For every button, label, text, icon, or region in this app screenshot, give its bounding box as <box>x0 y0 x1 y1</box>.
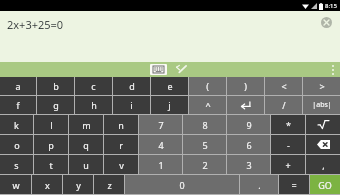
staticText: u <box>83 159 89 171</box>
button[interactable]: w <box>0 175 31 194</box>
button[interactable]: u <box>69 155 103 174</box>
staticText: < <box>281 80 287 92</box>
staticText: i <box>130 99 133 111</box>
staticText: j <box>168 99 171 111</box>
button[interactable]: - <box>271 135 305 154</box>
button[interactable]: < <box>265 77 302 95</box>
button[interactable]: ( <box>189 77 226 95</box>
button[interactable]: o <box>0 135 33 154</box>
button[interactable]: d <box>113 77 150 95</box>
staticText: 0 <box>179 179 185 191</box>
staticText: 2 <box>202 159 208 171</box>
button[interactable]: |abs| <box>303 96 340 114</box>
staticText: z <box>107 179 112 191</box>
button[interactable]: h <box>75 96 112 114</box>
button[interactable]: 1 <box>139 155 182 174</box>
staticText: GO <box>318 179 332 191</box>
staticText: o <box>14 139 20 151</box>
staticText: k <box>14 119 19 131</box>
button[interactable]: n <box>104 115 138 134</box>
button[interactable]: j <box>151 96 188 114</box>
button[interactable]: a <box>0 77 36 95</box>
staticText: . <box>258 179 261 191</box>
staticText: f <box>16 99 20 111</box>
button[interactable]: 6 <box>227 135 270 154</box>
button[interactable]: g <box>37 96 74 114</box>
button[interactable]: e <box>151 77 188 95</box>
staticText: 3 <box>246 159 252 171</box>
staticText: ) <box>244 80 247 92</box>
button[interactable]: z <box>94 175 124 194</box>
button[interactable]: s <box>0 155 33 174</box>
button[interactable]: 3 <box>227 155 270 174</box>
staticText: w <box>12 179 20 191</box>
button[interactable]: + <box>271 155 305 174</box>
button[interactable]: y <box>63 175 93 194</box>
staticText: = <box>291 179 297 191</box>
staticText: |abs| <box>312 100 332 110</box>
button[interactable]: 5 <box>183 135 226 154</box>
button[interactable]: m <box>69 115 103 134</box>
staticText: 9 <box>246 119 252 131</box>
button[interactable]: 4 <box>139 135 182 154</box>
button[interactable]: Handwriting input <box>173 64 190 75</box>
button[interactable]: , <box>306 155 340 174</box>
button[interactable]: f <box>0 96 36 114</box>
button[interactable]: 0 <box>125 175 239 194</box>
staticText: - <box>287 139 290 151</box>
button[interactable]: . <box>240 175 278 194</box>
button[interactable]: Backspace <box>306 135 340 154</box>
staticText: / <box>282 99 286 111</box>
staticText: t <box>49 159 53 171</box>
button[interactable]: = <box>279 175 309 194</box>
staticText: p <box>48 139 54 151</box>
button[interactable]: v <box>104 155 138 174</box>
staticText: 5 <box>202 139 208 151</box>
button[interactable]: q <box>69 135 103 154</box>
button[interactable]: More options <box>326 62 340 77</box>
staticText: y <box>76 179 81 191</box>
button[interactable]: ^ <box>189 96 226 114</box>
button[interactable]: GO <box>310 175 340 194</box>
staticText: d <box>129 80 135 92</box>
button[interactable]: ) <box>227 77 264 95</box>
staticText: ( <box>206 80 209 92</box>
staticText: 1 <box>158 159 164 171</box>
staticText: n <box>118 119 124 131</box>
button[interactable]: b <box>37 77 74 95</box>
button[interactable]: > <box>303 77 340 95</box>
button[interactable]: c <box>75 77 112 95</box>
staticText: c <box>91 80 96 92</box>
staticText: , <box>322 159 325 171</box>
button[interactable]: / <box>265 96 302 114</box>
staticText: l <box>50 119 53 131</box>
staticText: a <box>15 80 21 92</box>
button[interactable]: Square root <box>306 115 340 134</box>
staticText: r <box>119 139 123 151</box>
button[interactable]: 2 <box>183 155 226 174</box>
button[interactable]: t <box>34 155 68 174</box>
button[interactable]: Keyboard input <box>150 64 167 75</box>
button[interactable]: i <box>113 96 150 114</box>
staticText: 8:15 <box>325 2 337 10</box>
staticText: + <box>285 159 291 171</box>
staticText: s <box>14 159 19 171</box>
button[interactable]: Clear <box>321 17 332 28</box>
staticText: 7 <box>158 119 164 131</box>
staticText: q <box>83 139 89 151</box>
staticText: h <box>91 99 97 111</box>
staticText: b <box>53 80 59 92</box>
button[interactable]: r <box>104 135 138 154</box>
button[interactable]: Enter <box>227 96 264 114</box>
button[interactable]: 8 <box>183 115 226 134</box>
staticText: 6 <box>246 139 252 151</box>
button[interactable]: 9 <box>227 115 270 134</box>
button[interactable]: * <box>271 115 305 134</box>
button[interactable]: p <box>34 135 68 154</box>
button[interactable]: k <box>0 115 33 134</box>
button[interactable]: x <box>32 175 62 194</box>
button[interactable]: l <box>34 115 68 134</box>
staticText: 4 <box>158 139 164 151</box>
staticText: 8 <box>202 119 208 131</box>
button[interactable]: 7 <box>139 115 182 134</box>
